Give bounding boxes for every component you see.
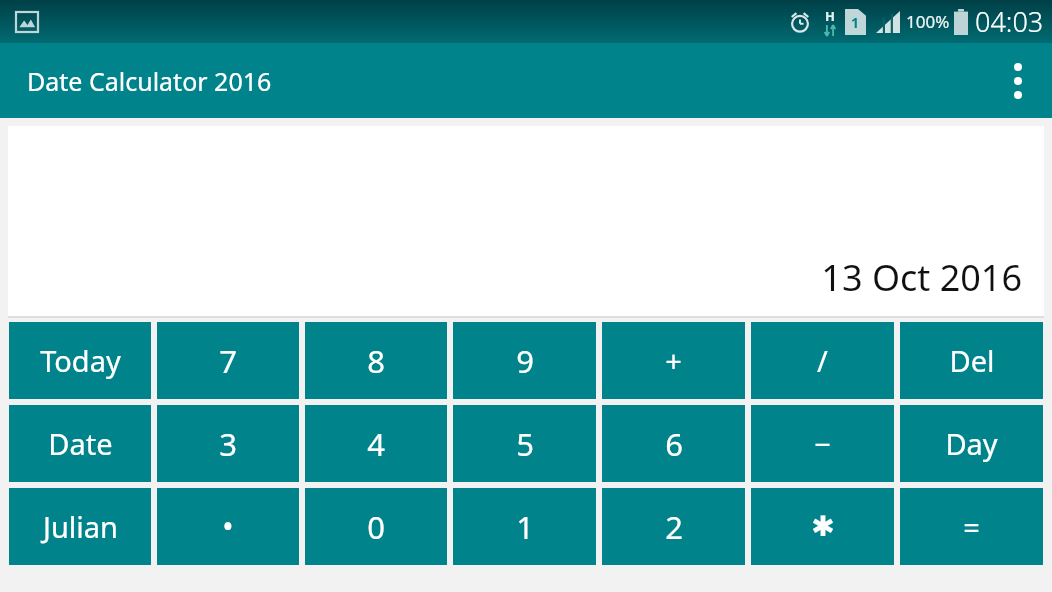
button[interactable]: 7	[157, 322, 299, 399]
button[interactable]: Julian	[9, 488, 151, 565]
staticText: 0	[367, 506, 385, 548]
button[interactable]: +	[602, 322, 745, 399]
staticText: •	[222, 506, 234, 547]
staticText: 5	[516, 423, 534, 465]
staticText: 7	[219, 340, 237, 382]
button[interactable]: 4	[305, 405, 447, 482]
staticText: Del	[949, 341, 995, 380]
button[interactable]: /	[751, 322, 894, 399]
button[interactable]: −	[751, 405, 894, 482]
button[interactable]: •	[157, 488, 299, 565]
button[interactable]: More options	[990, 53, 1046, 109]
staticText: H	[825, 7, 835, 25]
button[interactable]: 8	[305, 322, 447, 399]
button[interactable]: Day	[900, 405, 1043, 482]
staticText: +	[665, 341, 682, 380]
staticText: 9	[516, 340, 534, 382]
button[interactable]: ✱	[751, 488, 894, 565]
staticText: =	[963, 507, 980, 546]
staticText: 100%	[906, 10, 950, 33]
staticText: 3	[219, 423, 237, 465]
button[interactable]: 1	[453, 488, 596, 565]
button[interactable]: 0	[305, 488, 447, 565]
staticText: Julian	[43, 507, 118, 546]
button[interactable]: 13 Oct 2016	[8, 126, 1044, 316]
staticText: Date	[48, 424, 113, 463]
button[interactable]: =	[900, 488, 1043, 565]
button[interactable]: Date	[9, 405, 151, 482]
staticText: 13 Oct 2016	[821, 253, 1022, 302]
staticText: Date Calculator 2016	[27, 64, 272, 98]
staticText: 1	[516, 506, 534, 548]
button[interactable]: Today	[9, 322, 151, 399]
button[interactable]: 9	[453, 322, 596, 399]
staticText: /	[817, 341, 828, 380]
button[interactable]: 6	[602, 405, 745, 482]
staticText: 1	[851, 13, 860, 32]
staticText: 4	[367, 423, 385, 465]
staticText: Today	[40, 341, 121, 380]
staticText: ✱	[811, 510, 835, 543]
staticText: 04:03	[975, 3, 1044, 40]
staticText: −	[814, 424, 831, 463]
button[interactable]: Del	[900, 322, 1043, 399]
staticText: Day	[945, 424, 998, 463]
staticText: 6	[665, 423, 683, 465]
button[interactable]: 3	[157, 405, 299, 482]
staticText: 8	[367, 340, 385, 382]
button[interactable]: 2	[602, 488, 745, 565]
button[interactable]: 5	[453, 405, 596, 482]
staticText: 2	[665, 506, 683, 548]
